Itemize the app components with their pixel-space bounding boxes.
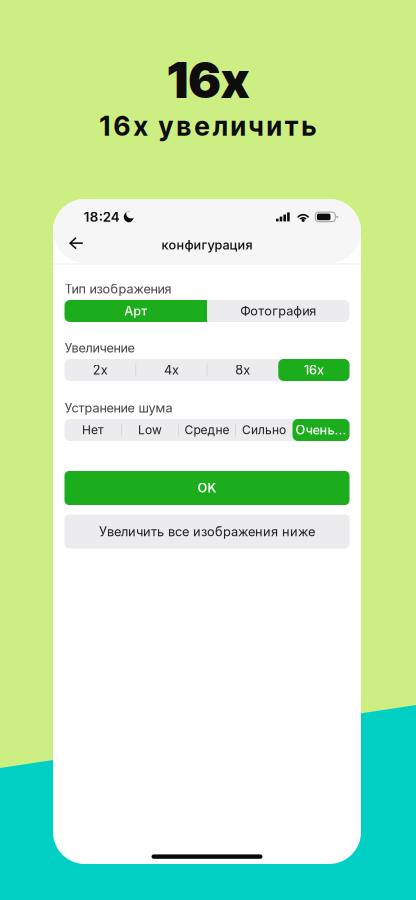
staticText: Фотография bbox=[240, 303, 316, 319]
button[interactable]: Очень... bbox=[292, 419, 349, 441]
button[interactable]: Фотография bbox=[207, 300, 349, 322]
staticText: Тип изображения bbox=[64, 281, 171, 297]
button[interactable]: Сильно bbox=[235, 419, 292, 441]
staticText: Средне bbox=[184, 423, 229, 437]
button[interactable]: Арт bbox=[64, 300, 207, 322]
staticText: 18:24 bbox=[84, 209, 120, 225]
staticText: Арт bbox=[124, 303, 147, 319]
staticText: Очень... bbox=[295, 422, 346, 438]
staticText: 4x bbox=[164, 362, 179, 378]
button[interactable]: OK bbox=[64, 471, 349, 505]
staticText: OK bbox=[197, 480, 216, 496]
staticText: 2x bbox=[93, 362, 108, 378]
button[interactable]: 8x bbox=[207, 359, 278, 381]
staticText: 16x увеличить bbox=[99, 110, 316, 142]
button[interactable]: Средне bbox=[178, 419, 235, 441]
button[interactable]: 16x bbox=[278, 359, 349, 381]
staticText: 16x bbox=[167, 50, 249, 110]
button[interactable]: 4x bbox=[136, 359, 207, 381]
staticText: Нет bbox=[82, 423, 104, 437]
button[interactable]: Нет bbox=[64, 419, 121, 441]
staticText: Low bbox=[138, 423, 162, 437]
button[interactable]: Увеличить все изображения ниже bbox=[64, 514, 349, 548]
staticText: 16x bbox=[304, 362, 324, 378]
button[interactable]: Low bbox=[121, 419, 178, 441]
button[interactable]: Back bbox=[62, 230, 90, 256]
staticText: 8x bbox=[235, 362, 250, 378]
button[interactable]: 2x bbox=[64, 359, 136, 381]
staticText: Сильно bbox=[242, 423, 286, 437]
staticText: конфигурация bbox=[161, 237, 252, 253]
staticText: Увеличение bbox=[64, 340, 134, 356]
staticText: Устранение шума bbox=[64, 400, 172, 416]
staticText: Увеличить все изображения ниже bbox=[99, 524, 315, 539]
